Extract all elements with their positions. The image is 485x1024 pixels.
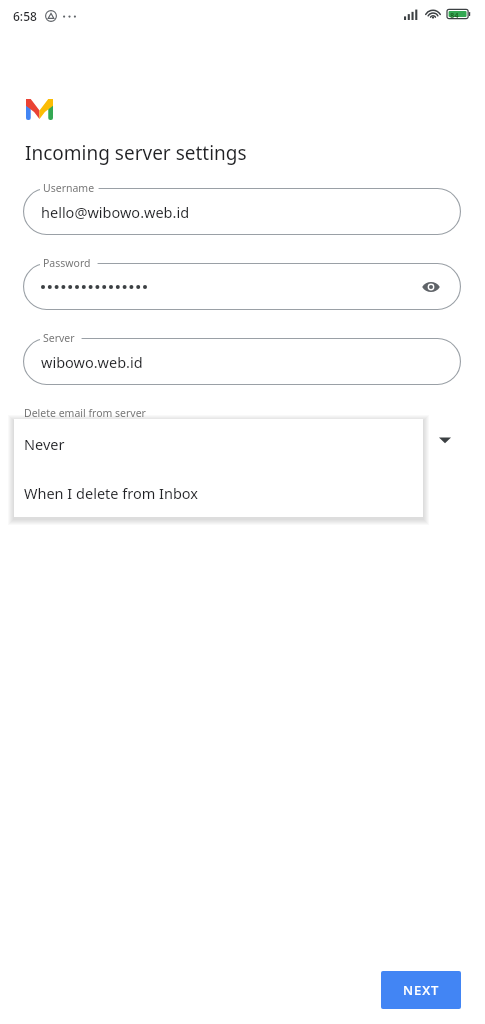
staticText: 84: [450, 10, 459, 20]
button[interactable]: Open dropdown: [433, 428, 457, 452]
staticText: Password: [43, 256, 91, 270]
staticText: Never: [24, 434, 65, 454]
button[interactable]: Never: [14, 419, 423, 468]
staticText: Delete email from server: [24, 406, 146, 420]
staticText: 6:58: [13, 8, 37, 24]
button[interactable]: Show password: [417, 273, 445, 301]
staticText: Server: [43, 331, 75, 345]
button[interactable]: NEXT: [381, 971, 461, 1009]
button[interactable]: Password: [23, 263, 461, 310]
button[interactable]: Server: [23, 338, 461, 385]
staticText: hello@wibowo.web.id: [41, 202, 190, 222]
staticText: When I delete from Inbox: [24, 483, 198, 503]
staticText: NEXT: [403, 981, 440, 999]
staticText: wibowo.web.id: [41, 352, 143, 372]
button[interactable]: Username: [23, 188, 461, 235]
button[interactable]: When I delete from Inbox: [14, 468, 423, 517]
staticText: Username: [43, 181, 95, 195]
staticText: Incoming server settings: [25, 140, 247, 166]
